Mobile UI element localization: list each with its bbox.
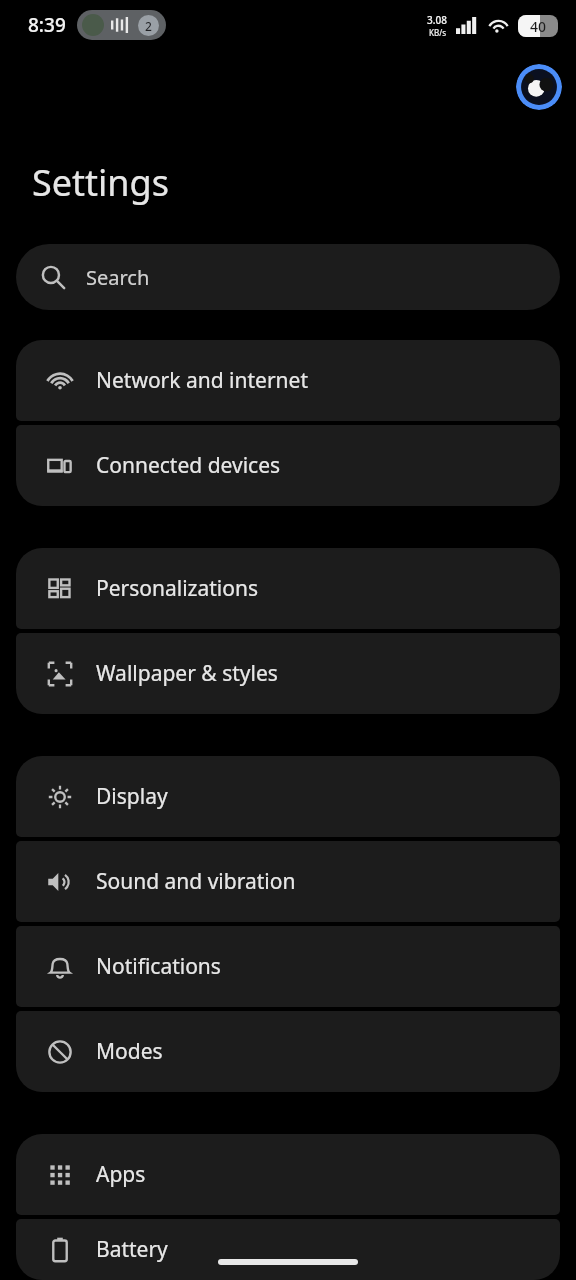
staticText: Connected devices <box>96 451 281 480</box>
staticText: Sound and vibration <box>96 867 296 896</box>
staticText: Apps <box>96 1160 146 1189</box>
button[interactable]: Account profile <box>516 64 562 110</box>
button[interactable]: Modes <box>16 1011 560 1092</box>
staticText: 2 <box>145 18 152 34</box>
button[interactable]: Display <box>16 756 560 837</box>
staticText: Settings <box>32 158 169 207</box>
staticText: Search <box>86 264 150 291</box>
staticText: KB/s <box>429 27 446 38</box>
button[interactable]: Apps <box>16 1134 560 1215</box>
button[interactable]: Battery <box>16 1219 560 1280</box>
staticText: 40 <box>530 17 547 36</box>
staticText: 3.08 <box>427 13 447 27</box>
staticText: Network and internet <box>96 366 308 395</box>
staticText: Wallpaper & styles <box>96 659 278 688</box>
staticText: Modes <box>96 1037 163 1066</box>
staticText: Personalizations <box>96 574 258 603</box>
button[interactable]: Wallpaper & styles <box>16 633 560 714</box>
button[interactable]: Personalizations <box>16 548 560 629</box>
staticText: Display <box>96 782 168 811</box>
staticText: 8:39 <box>28 12 66 38</box>
staticText: Battery <box>96 1235 168 1264</box>
button[interactable]: Sound and vibration <box>16 841 560 922</box>
staticText: Notifications <box>96 952 221 981</box>
button[interactable]: Connected devices <box>16 425 560 506</box>
button[interactable]: Notifications <box>16 926 560 1007</box>
button[interactable]: Network and internet <box>16 340 560 421</box>
button[interactable]: Search <box>16 244 560 310</box>
